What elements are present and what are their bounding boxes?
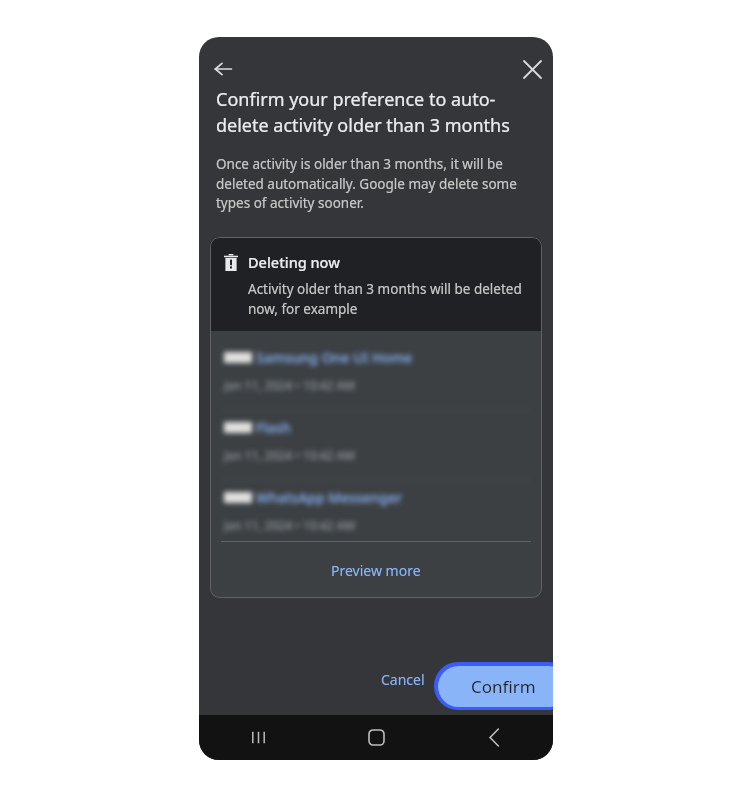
- button[interactable]: Back: [435, 715, 553, 760]
- button[interactable]: Home: [317, 715, 435, 760]
- button[interactable]: Close: [515, 52, 549, 86]
- staticText: Once activity is older than 3 months, it…: [216, 155, 527, 212]
- button[interactable]: Cancel: [381, 670, 425, 689]
- staticText: Jan 11, 2024 • 10:42 AM: [224, 517, 356, 533]
- button[interactable]: Preview more: [210, 542, 542, 598]
- staticText: Jan 11, 2024 • 10:42 AM: [224, 447, 356, 463]
- button[interactable]: Recents: [199, 715, 317, 760]
- staticText: Flash: [256, 418, 291, 437]
- staticText: Cancel: [381, 670, 425, 689]
- staticText: WhatsApp Messenger: [256, 488, 403, 507]
- staticText: Confirm your preference to auto-delete a…: [216, 87, 531, 137]
- staticText: Confirm: [471, 675, 536, 698]
- staticText: Activity older than 3 months will be del…: [248, 280, 522, 318]
- staticText: Preview more: [331, 561, 421, 580]
- staticText: Jan 11, 2024 • 10:42 AM: [224, 377, 356, 393]
- staticText: Samsung One UI Home: [256, 348, 413, 367]
- button[interactable]: Back: [206, 52, 240, 86]
- button[interactable]: Confirm: [434, 662, 553, 710]
- staticText: Deleting now: [248, 252, 340, 272]
